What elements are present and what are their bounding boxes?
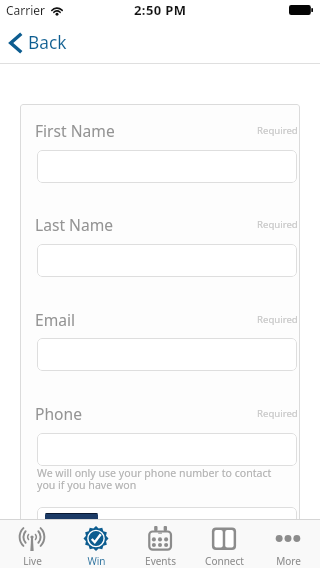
other: More xyxy=(275,526,301,551)
staticText: Win xyxy=(87,554,106,568)
button[interactable]: More xyxy=(256,520,320,568)
button[interactable] xyxy=(37,433,297,466)
button[interactable] xyxy=(37,507,297,540)
other: Events xyxy=(147,526,173,551)
staticText: First Name xyxy=(35,120,115,141)
button[interactable] xyxy=(37,150,297,183)
button[interactable] xyxy=(37,244,297,277)
button[interactable]: Connect xyxy=(192,520,256,568)
staticText: Live xyxy=(23,554,42,568)
other: Connect xyxy=(211,526,237,551)
button[interactable] xyxy=(45,513,98,533)
button[interactable]: Live xyxy=(0,520,64,568)
staticText: Phone xyxy=(35,403,82,424)
button[interactable] xyxy=(37,338,297,371)
staticText: We will only use your phone number to co… xyxy=(37,466,272,492)
staticText: Carrier xyxy=(6,2,46,18)
staticText: Events xyxy=(145,554,176,568)
staticText: Email xyxy=(35,309,76,330)
staticText: 2:50 PM xyxy=(134,1,187,19)
staticText: Last Name xyxy=(35,214,114,235)
button[interactable]: Win xyxy=(64,520,128,568)
other: Win xyxy=(83,526,109,551)
staticText: Required xyxy=(257,218,298,231)
button[interactable]: Events xyxy=(128,520,192,568)
staticText: More xyxy=(276,554,301,568)
staticText: Required xyxy=(257,407,298,420)
staticText: Connect xyxy=(205,554,244,568)
other: Live xyxy=(19,526,45,551)
staticText: Required xyxy=(257,313,298,326)
staticText: Back xyxy=(28,31,67,55)
button[interactable]: Back xyxy=(0,21,79,64)
staticText: Required xyxy=(257,124,298,137)
